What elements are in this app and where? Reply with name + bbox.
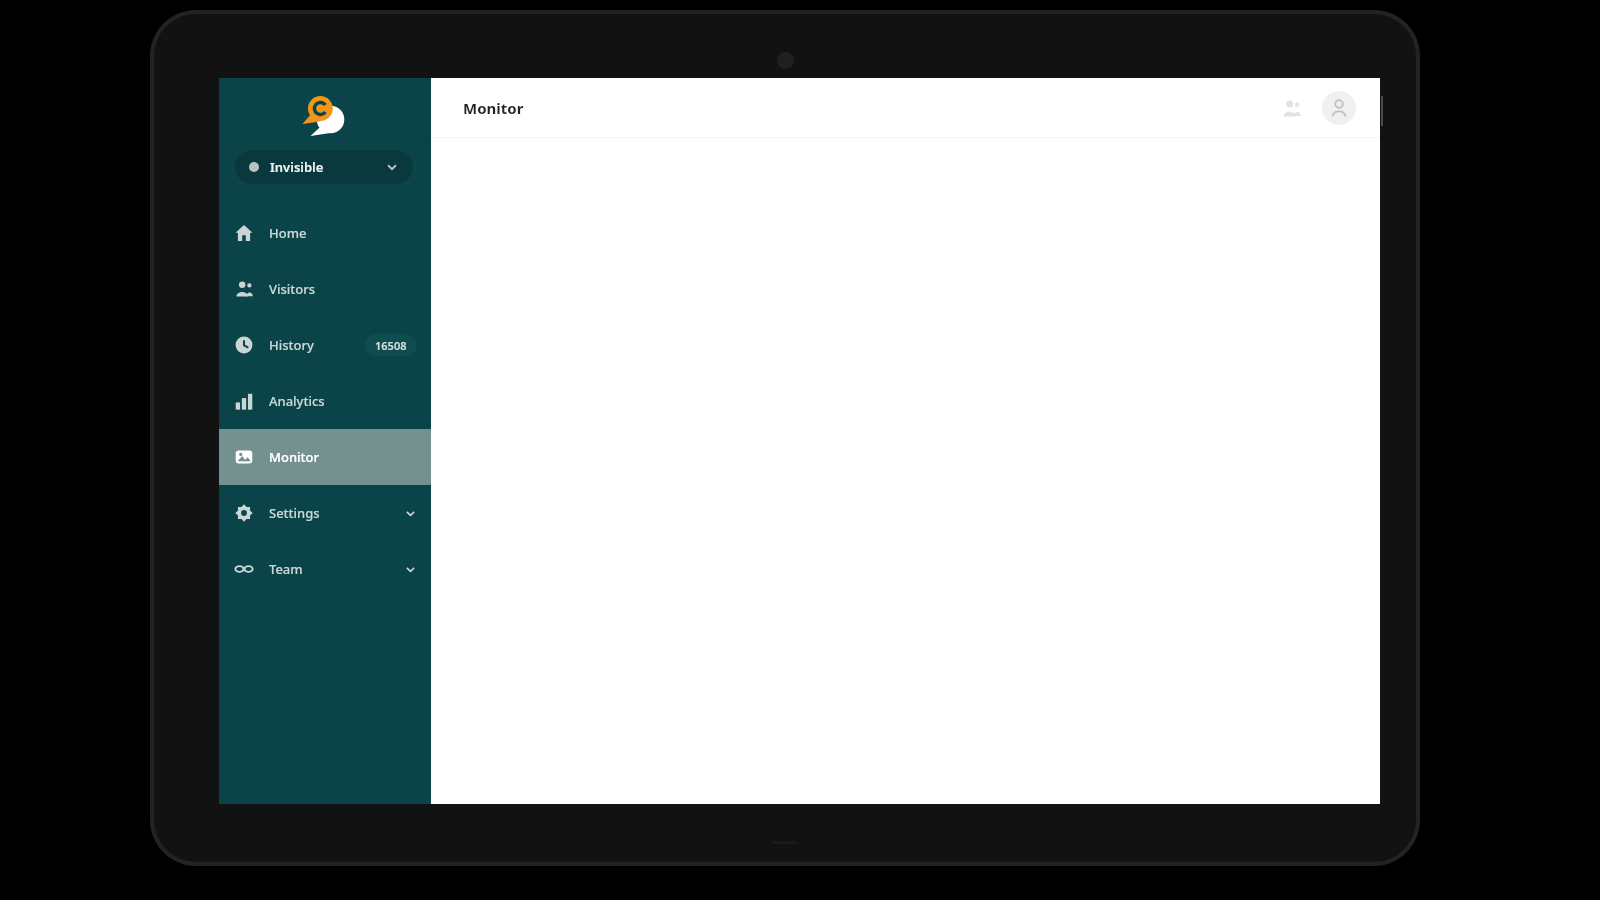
staticText: History	[269, 336, 314, 354]
button[interactable]: Agents	[1274, 91, 1308, 125]
button[interactable]: Visitors	[219, 261, 431, 317]
button[interactable]: Analytics	[219, 373, 431, 429]
staticText: Monitor	[269, 448, 319, 466]
button[interactable]: Monitor	[219, 429, 431, 485]
staticText: Analytics	[269, 392, 325, 410]
button[interactable]: Home	[219, 205, 431, 261]
button[interactable]: History	[219, 317, 431, 373]
button[interactable]: Logo	[302, 91, 348, 137]
staticText: Invisible	[270, 158, 324, 176]
button[interactable]: Team	[219, 541, 431, 597]
staticText: Settings	[269, 504, 320, 522]
button[interactable]: Settings	[219, 485, 431, 541]
button[interactable]: Profile	[1322, 91, 1356, 125]
staticText: 16508	[375, 338, 407, 353]
staticText: Home	[269, 224, 307, 242]
staticText: Team	[269, 560, 303, 578]
staticText: Visitors	[269, 280, 316, 298]
button[interactable]: Invisible	[235, 150, 413, 184]
staticText: Monitor	[463, 98, 524, 118]
